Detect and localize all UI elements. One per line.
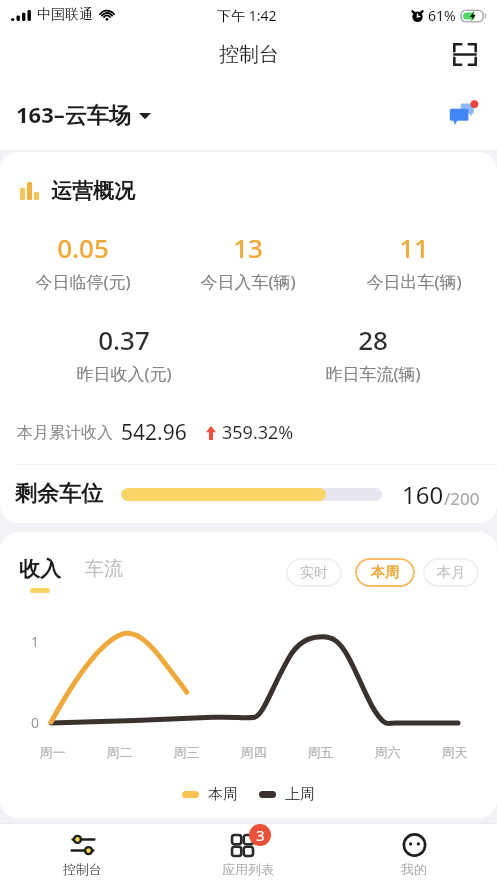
staticText: 周一 xyxy=(19,744,86,760)
staticText: 下午 1:42 xyxy=(217,6,277,25)
staticText: 160 xyxy=(402,478,444,511)
staticText: 本月 xyxy=(437,564,465,582)
staticText: 实时 xyxy=(300,564,328,582)
staticText: 控制台 xyxy=(63,861,102,877)
button[interactable]: 3 xyxy=(165,824,331,883)
staticText: 今日出车(辆) xyxy=(366,270,462,293)
button[interactable]: 车流 xyxy=(85,563,123,587)
button[interactable]: 本月 xyxy=(423,558,479,587)
staticText: /200 xyxy=(444,487,480,510)
button[interactable]: 控制台 xyxy=(0,824,165,883)
staticText: 163–云车场 xyxy=(16,99,131,129)
staticText: 359.32% xyxy=(222,420,294,445)
staticText: 3 xyxy=(256,825,265,845)
staticText: 昨日车流(辆) xyxy=(325,362,421,385)
staticText: 车流 xyxy=(85,557,123,581)
staticText: 剩余车位 xyxy=(15,480,103,508)
staticText: 上周 xyxy=(285,785,315,804)
staticText: 控制台 xyxy=(219,42,279,67)
staticText: 1 xyxy=(31,632,40,651)
button[interactable]: 163–云车场 xyxy=(16,99,151,129)
staticText: 13 xyxy=(233,230,263,265)
staticText: 11 xyxy=(399,230,429,265)
staticText: 周二 xyxy=(86,744,153,760)
staticText: 应用列表 xyxy=(222,861,274,877)
button[interactable]: 我的 xyxy=(331,824,497,883)
staticText: 昨日收入(元) xyxy=(76,362,172,385)
staticText: 周六 xyxy=(354,744,421,760)
button[interactable]: 消息 xyxy=(443,94,483,134)
staticText: 收入 xyxy=(19,556,61,582)
staticText: 0.37 xyxy=(98,322,150,357)
button[interactable]: 扫一扫 xyxy=(447,36,483,72)
staticText: 运营概况 xyxy=(51,178,135,204)
staticText: 今日入车(辆) xyxy=(200,270,296,293)
staticText: 542.96 xyxy=(121,418,187,447)
staticText: 本周 xyxy=(371,564,399,582)
staticText: 周五 xyxy=(287,744,354,760)
staticText: 今日临停(元) xyxy=(35,270,131,293)
staticText: 中国联通 xyxy=(37,6,93,24)
button[interactable]: 本周 xyxy=(355,558,415,587)
staticText: 本月累计收入 xyxy=(17,423,113,443)
button[interactable]: 收入 xyxy=(19,556,61,593)
staticText: 0 xyxy=(31,713,40,732)
staticText: 周三 xyxy=(153,744,220,760)
staticText: 周四 xyxy=(220,744,287,760)
staticText: 周天 xyxy=(421,744,488,760)
staticText: 28 xyxy=(358,322,388,357)
staticText: 61% xyxy=(428,6,456,25)
staticText: 本周 xyxy=(208,785,238,804)
staticText: 我的 xyxy=(401,861,427,877)
staticText: 0.05 xyxy=(57,230,109,265)
button[interactable]: 实时 xyxy=(286,558,342,587)
